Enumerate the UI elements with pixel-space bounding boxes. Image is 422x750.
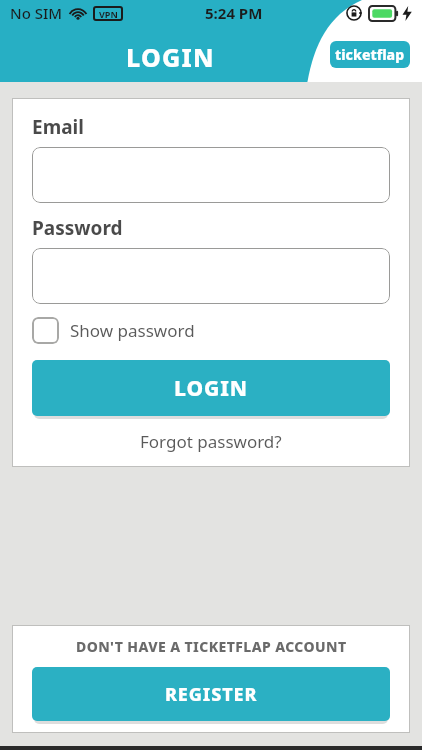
- staticText: ticketflap: [335, 45, 405, 64]
- staticText: Password: [32, 215, 123, 241]
- button[interactable]: ticketflap: [330, 41, 410, 68]
- staticText: DON'T HAVE A TICKETFLAP ACCOUNT: [76, 637, 347, 656]
- button[interactable]: [32, 147, 390, 203]
- staticText: Show password: [70, 319, 195, 342]
- staticText: 5:24 PM: [205, 3, 263, 23]
- staticText: LOGIN: [174, 374, 249, 403]
- button[interactable]: Show password: [32, 317, 195, 344]
- staticText: Forgot password?: [140, 430, 282, 453]
- staticText: REGISTER: [165, 682, 258, 707]
- button[interactable]: LOGIN: [32, 360, 390, 416]
- button[interactable]: REGISTER: [32, 667, 390, 721]
- button[interactable]: Forgot password?: [32, 430, 390, 453]
- staticText: Email: [32, 114, 84, 140]
- staticText: No SIM: [10, 3, 63, 23]
- button[interactable]: [32, 248, 390, 304]
- staticText: VPN: [99, 8, 118, 20]
- staticText: LOGIN: [126, 40, 215, 74]
